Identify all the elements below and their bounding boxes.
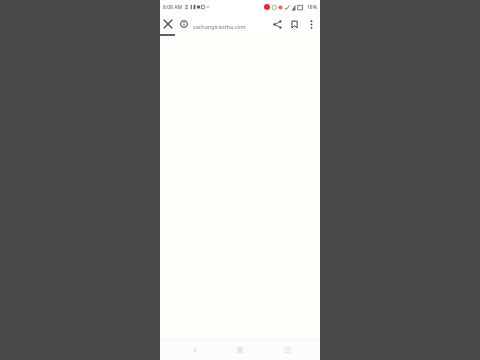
button[interactable]: Home: [227, 340, 253, 360]
button[interactable]: Close: [160, 16, 176, 32]
button[interactable]: Site information: [176, 16, 192, 32]
button[interactable]: Bookmark: [286, 16, 303, 33]
button[interactable]: Share: [269, 16, 286, 33]
button[interactable]: More options: [303, 16, 319, 32]
staticText: 18%: [307, 4, 317, 11]
staticText: 8:08 AM: [163, 4, 183, 11]
staticText: sachangiraotha.com: [193, 23, 246, 30]
button[interactable]: Recent apps: [274, 340, 300, 360]
